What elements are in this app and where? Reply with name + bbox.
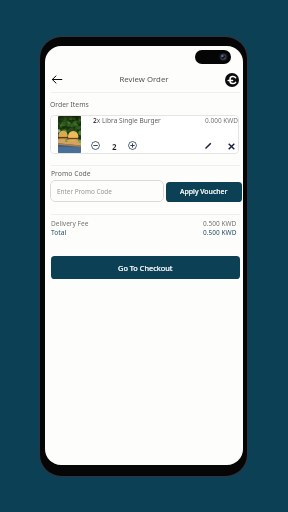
button[interactable]: Increase quantity <box>128 141 137 150</box>
staticText: Apply Voucher <box>180 187 228 197</box>
staticText: 0.500 KWD <box>203 219 237 228</box>
staticText: 0.500 KWD <box>203 228 237 237</box>
button[interactable]: Go To Checkout <box>51 256 240 279</box>
button[interactable]: 2x Libra Single Burger <box>50 115 239 154</box>
button[interactable]: Enter Promo Code <box>50 180 164 202</box>
staticText: 2 <box>112 141 117 151</box>
button[interactable]: Decrease quantity <box>91 141 100 150</box>
staticText: Review Order <box>119 74 169 85</box>
button[interactable]: Account <box>223 71 241 89</box>
staticText: 2x Libra Single Burger <box>93 116 161 125</box>
staticText: Delivery Fee <box>51 219 89 228</box>
staticText: Total <box>51 228 67 237</box>
button[interactable]: Back <box>47 70 66 89</box>
button[interactable]: Apply Voucher <box>166 182 242 202</box>
button[interactable]: Edit item <box>203 141 213 151</box>
staticText: Order Items <box>50 100 89 109</box>
staticText: Enter Promo Code <box>57 187 112 196</box>
staticText: Promo Code <box>51 169 91 178</box>
staticText: 0.000 KWD <box>205 116 239 124</box>
staticText: Go To Checkout <box>118 263 173 273</box>
button[interactable]: Remove item <box>226 141 236 151</box>
